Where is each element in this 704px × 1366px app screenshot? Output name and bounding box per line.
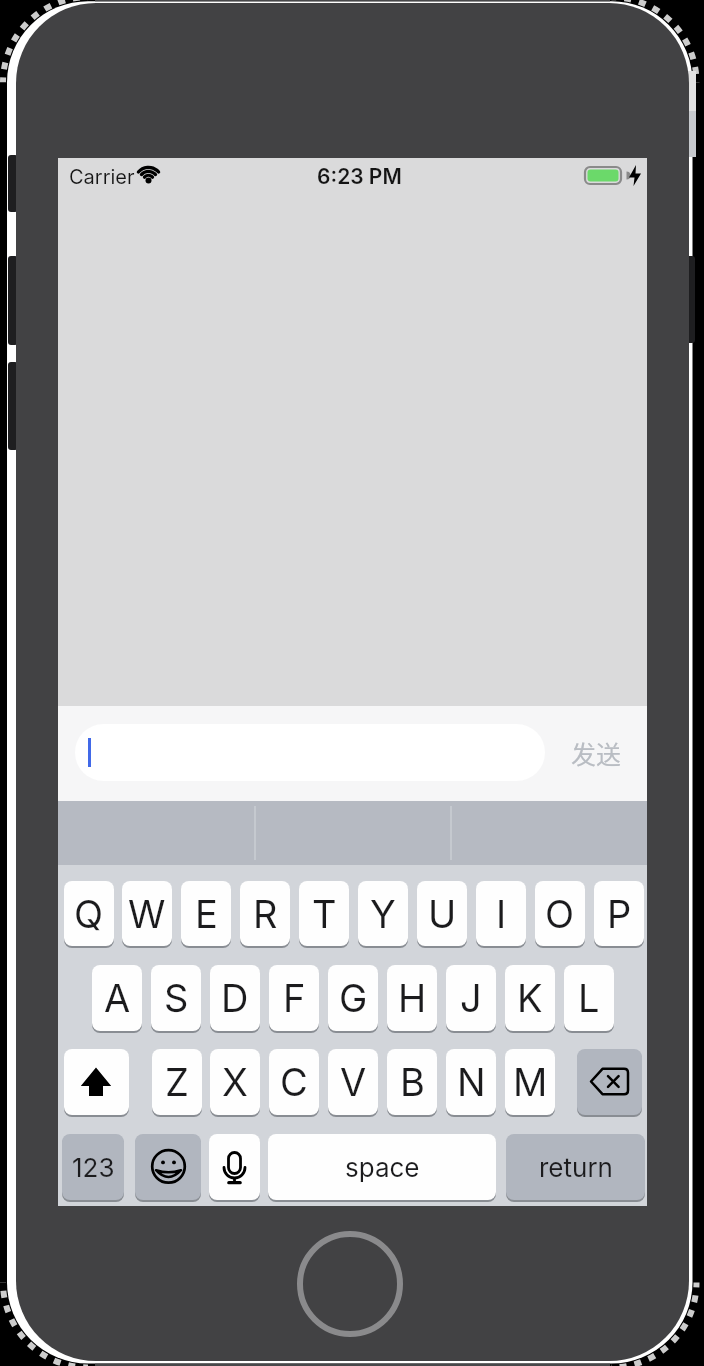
button[interactable]: [64, 1049, 129, 1115]
button[interactable]: N: [446, 1049, 496, 1115]
staticText: C: [280, 1059, 308, 1105]
staticText: B: [400, 1059, 425, 1105]
staticText: L: [578, 975, 600, 1021]
staticText: 6:23 PM: [317, 164, 402, 189]
button[interactable]: R: [240, 881, 290, 946]
staticText: Q: [74, 891, 104, 937]
staticText: return: [539, 1152, 613, 1183]
button[interactable]: [135, 1134, 201, 1200]
staticText: F: [283, 975, 306, 1021]
staticText: U: [428, 891, 457, 937]
button[interactable]: O: [535, 881, 585, 946]
button[interactable]: G: [328, 965, 378, 1031]
staticText: 发送: [571, 735, 622, 771]
button[interactable]: F: [269, 965, 319, 1031]
button[interactable]: L: [564, 965, 614, 1031]
button[interactable]: T: [299, 881, 349, 946]
staticText: K: [517, 975, 543, 1021]
button[interactable]: Y: [358, 881, 408, 946]
button[interactable]: space: [268, 1134, 496, 1200]
staticText: O: [545, 891, 575, 937]
button[interactable]: [300, 1234, 400, 1334]
staticText: M: [513, 1059, 548, 1105]
button[interactable]: B: [387, 1049, 437, 1115]
button[interactable]: C: [269, 1049, 319, 1115]
button[interactable]: H: [387, 965, 437, 1031]
button[interactable]: I: [476, 881, 526, 946]
button[interactable]: [577, 1049, 642, 1115]
staticText: X: [222, 1059, 248, 1105]
button[interactable]: D: [210, 965, 260, 1031]
staticText: Carrier: [69, 165, 135, 189]
staticText: space: [345, 1152, 420, 1183]
staticText: J: [460, 975, 482, 1021]
button[interactable]: [209, 1134, 260, 1200]
button[interactable]: X: [210, 1049, 260, 1115]
staticText: H: [398, 975, 427, 1021]
staticText: V: [340, 1059, 367, 1105]
button[interactable]: P: [594, 881, 644, 946]
button[interactable]: 发送: [554, 724, 638, 781]
staticText: G: [339, 975, 368, 1021]
button[interactable]: 123: [62, 1134, 124, 1200]
button[interactable]: V: [328, 1049, 378, 1115]
staticText: S: [164, 975, 189, 1021]
button[interactable]: return: [506, 1134, 645, 1200]
button[interactable]: U: [417, 881, 467, 946]
button[interactable]: M: [505, 1049, 555, 1115]
button[interactable]: K: [505, 965, 555, 1031]
staticText: E: [195, 891, 218, 937]
button[interactable]: [75, 724, 545, 781]
button[interactable]: A: [92, 965, 142, 1031]
staticText: N: [457, 1059, 486, 1105]
button[interactable]: E: [181, 881, 231, 946]
staticText: R: [253, 891, 278, 937]
staticText: Z: [165, 1059, 189, 1105]
button[interactable]: S: [151, 965, 201, 1031]
staticText: Y: [370, 891, 396, 937]
staticText: 123: [72, 1152, 115, 1183]
staticText: A: [104, 975, 131, 1021]
button[interactable]: W: [122, 881, 172, 946]
button[interactable]: J: [446, 965, 496, 1031]
staticText: W: [128, 891, 166, 937]
staticText: I: [496, 891, 507, 937]
staticText: T: [312, 891, 337, 937]
staticText: P: [607, 891, 632, 937]
button[interactable]: Q: [64, 881, 114, 946]
button[interactable]: Z: [152, 1049, 202, 1115]
staticText: D: [221, 975, 249, 1021]
